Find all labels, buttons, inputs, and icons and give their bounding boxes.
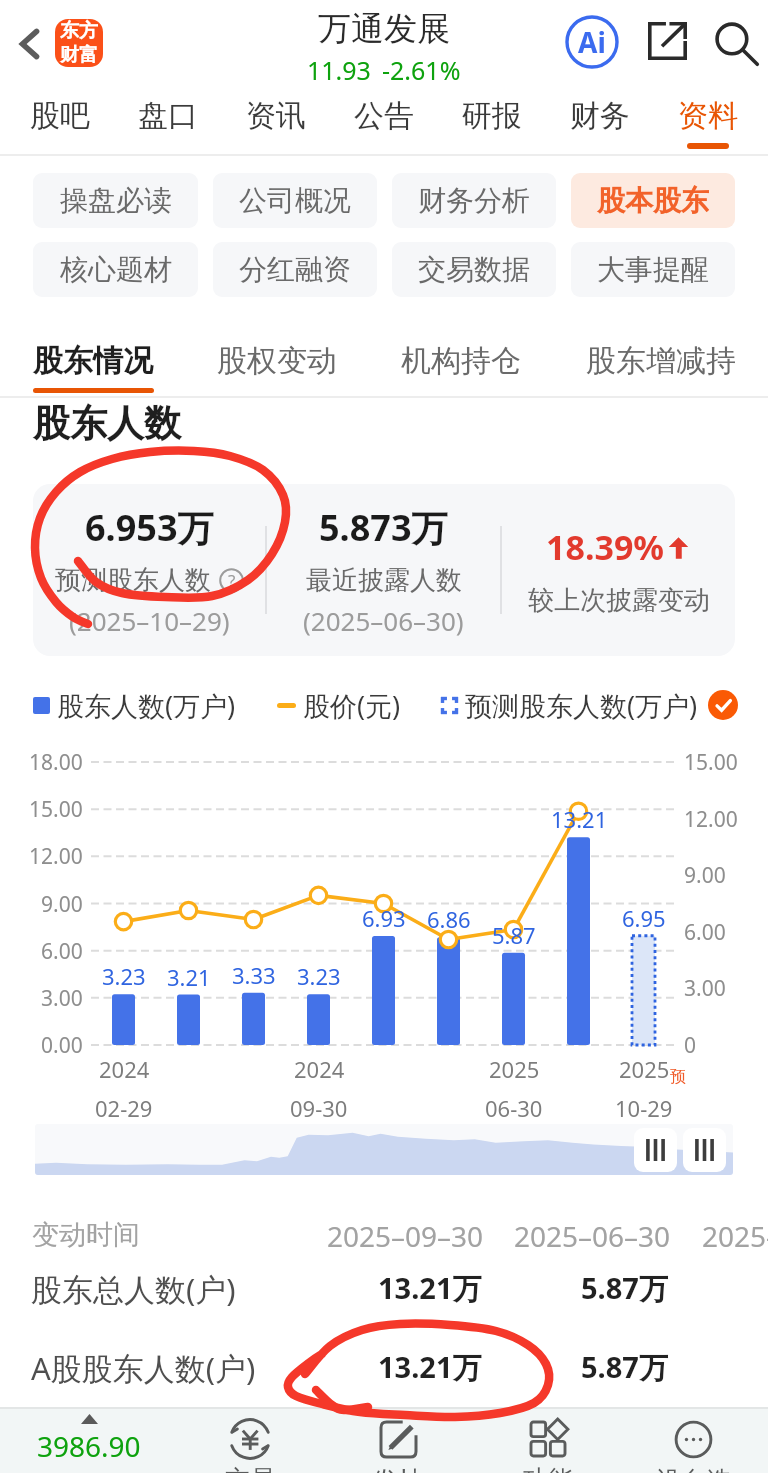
staticText: 预测股东人数 xyxy=(55,564,211,597)
staticText: 6.95 xyxy=(622,903,666,933)
staticText: 3.00 xyxy=(41,984,83,1013)
staticText: 股东情况 xyxy=(33,342,153,380)
staticText: 12.00 xyxy=(29,842,83,871)
button[interactable]: 股权变动 xyxy=(205,326,349,396)
staticText: 18.39% xyxy=(546,524,665,570)
button[interactable]: 公告 xyxy=(330,87,438,156)
button[interactable]: 3986.90 xyxy=(0,1407,170,1473)
staticText: 财务分析 xyxy=(418,183,530,218)
staticText: Ai xyxy=(578,23,606,61)
button[interactable]: 股本股东 xyxy=(571,173,735,228)
button[interactable]: 资料 xyxy=(654,87,762,156)
button[interactable]: AI assistant xyxy=(565,15,619,69)
staticText: 核心题材 xyxy=(60,252,172,287)
staticText: 5.873万 xyxy=(319,503,448,552)
staticText: 股本股东 xyxy=(597,183,709,218)
staticText: 2025–09–30 xyxy=(327,1217,484,1255)
staticText: 机构持仓 xyxy=(401,342,521,380)
staticText: 股权变动 xyxy=(217,342,337,380)
staticText: 预 xyxy=(670,1067,686,1087)
staticText: 3.23 xyxy=(102,961,146,991)
staticText: 股吧 xyxy=(30,97,90,135)
button[interactable]: 分红融资 xyxy=(213,242,377,297)
staticText: 股东增减持 xyxy=(586,342,736,380)
button[interactable]: 盘口 xyxy=(114,87,222,156)
staticText: 公司概况 xyxy=(239,183,351,218)
staticText: 万通发展 xyxy=(318,8,450,50)
button[interactable]: 公司概况 xyxy=(213,173,377,228)
button[interactable]: Toggle forecast xyxy=(708,690,738,720)
staticText: 东方 xyxy=(60,19,98,43)
staticText: 交易数据 xyxy=(418,252,530,287)
staticText: 财务 xyxy=(570,97,630,135)
staticText: 10-29 xyxy=(615,1093,673,1123)
staticText: 资讯 xyxy=(246,97,306,135)
staticText: 3.23 xyxy=(297,961,341,991)
staticText: 3.00 xyxy=(684,974,726,1003)
button[interactable]: 核心题材 xyxy=(33,242,198,297)
button[interactable]: East Money home xyxy=(55,19,103,67)
button[interactable]: Range handle xyxy=(634,1128,677,1172)
staticText: 06-30 xyxy=(485,1093,543,1123)
staticText: 5.87万 xyxy=(581,1347,668,1387)
staticText: 15.00 xyxy=(29,795,83,824)
staticText: 09-30 xyxy=(290,1093,348,1123)
staticText: 5.87万 xyxy=(581,1268,668,1308)
staticText: 18.00 xyxy=(29,748,83,777)
staticText: 2024 xyxy=(99,1054,150,1084)
staticText: 功能 xyxy=(523,1464,573,1473)
button[interactable]: 发帖 xyxy=(324,1407,472,1473)
staticText: 最近披露人数 xyxy=(306,564,462,597)
staticText: 2025 xyxy=(619,1054,670,1084)
button[interactable]: 功能 xyxy=(474,1407,622,1473)
button[interactable]: 大事提醒 xyxy=(571,242,735,297)
button[interactable]: A股股东人数(户) xyxy=(0,1325,768,1404)
staticText: 股东人数 xyxy=(33,400,181,447)
button[interactable]: 机构持仓 xyxy=(389,326,533,396)
button[interactable]: 操盘必读 xyxy=(33,173,198,228)
staticText: 6.00 xyxy=(41,937,83,966)
staticText: 6.953万 xyxy=(85,503,214,552)
staticText: 15.00 xyxy=(684,748,738,777)
staticText: 9.00 xyxy=(684,861,726,890)
staticText: 研报 xyxy=(462,97,522,135)
button[interactable]: 股东增减持 xyxy=(574,326,748,396)
button[interactable]: 资讯 xyxy=(222,87,330,156)
staticText: 2025 xyxy=(489,1054,540,1084)
button[interactable]: Back xyxy=(4,18,56,70)
button[interactable]: 股吧 xyxy=(6,87,114,156)
button[interactable]: 交易 xyxy=(176,1407,324,1473)
staticText: ? xyxy=(228,569,236,592)
button[interactable]: 交易数据 xyxy=(392,242,556,297)
staticText: 公告 xyxy=(354,97,414,135)
button[interactable]: 财务 xyxy=(546,87,654,156)
staticText: 6.00 xyxy=(684,918,726,947)
button[interactable]: 财务分析 xyxy=(392,173,556,228)
staticText: 13.21万 xyxy=(378,1347,482,1387)
button[interactable]: Share xyxy=(648,22,687,60)
staticText: 9.00 xyxy=(41,890,83,919)
staticText: (2025–06–30) xyxy=(303,603,464,638)
button[interactable]: Range handle xyxy=(683,1128,726,1172)
staticText: 0.00 xyxy=(41,1031,83,1060)
staticText: 变动时间 xyxy=(32,1218,140,1252)
button[interactable]: 设自选 xyxy=(619,1407,767,1473)
staticText: -2.61% xyxy=(382,53,461,87)
staticText: 12.00 xyxy=(684,805,738,834)
staticText: 交易 xyxy=(225,1464,275,1473)
staticText: 股东总人数(户) xyxy=(31,1268,236,1310)
staticText: 11.93 xyxy=(307,53,371,87)
staticText: 股东人数(万户) xyxy=(57,687,236,724)
staticText: 3986.90 xyxy=(37,1427,141,1465)
staticText: (2025–10–29) xyxy=(69,603,230,638)
button[interactable]: 研报 xyxy=(438,87,546,156)
staticText: 分红融资 xyxy=(239,252,351,287)
staticText: 0 xyxy=(684,1031,697,1060)
staticText: 设自选 xyxy=(656,1465,731,1473)
button[interactable]: 股东情况 xyxy=(21,326,166,396)
button[interactable]: Search xyxy=(716,23,759,65)
button[interactable]: 股东总人数(户) xyxy=(0,1246,768,1325)
staticText: 财富 xyxy=(60,43,98,67)
staticText: 操盘必读 xyxy=(60,183,172,218)
